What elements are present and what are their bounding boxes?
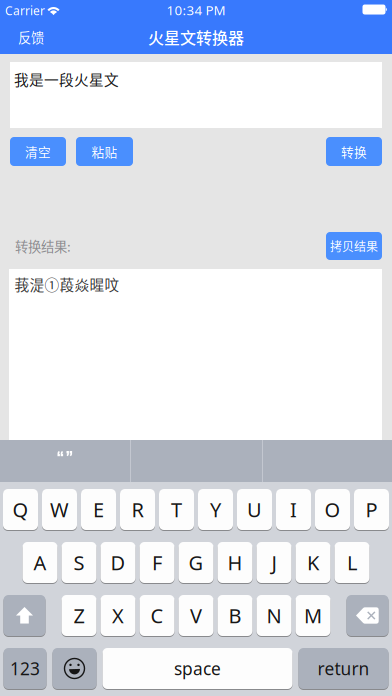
staticText: Z (73, 602, 84, 629)
button[interactable]: 拷贝结果 (326, 232, 382, 260)
staticText: return (317, 657, 369, 680)
staticText: W (50, 496, 69, 523)
staticText: 清空 (25, 142, 51, 161)
staticText: G (188, 549, 203, 576)
staticText: 10:34 PM (166, 1, 225, 19)
button[interactable]: H (217, 542, 252, 583)
button[interactable]: A (22, 542, 57, 583)
staticText: V (190, 602, 202, 629)
button[interactable]: X (100, 595, 135, 636)
staticText: A (33, 549, 46, 576)
staticText: D (110, 549, 125, 576)
button[interactable]: K (295, 542, 330, 583)
staticText: E (93, 496, 104, 523)
button[interactable]: J (256, 542, 291, 583)
staticText: space (174, 657, 221, 680)
button[interactable]: 转换 (326, 137, 382, 166)
button[interactable]: Z (61, 595, 96, 636)
button[interactable] (0, 440, 130, 482)
staticText: Carrier (5, 2, 45, 18)
button[interactable]: T (159, 489, 194, 530)
button[interactable]: L (334, 542, 369, 583)
staticText: 莪湜①葮焱暒呅 (14, 273, 119, 295)
button[interactable]: D (100, 542, 135, 583)
staticText: X (112, 602, 124, 629)
button[interactable]: S (61, 542, 96, 583)
staticText: H (227, 549, 242, 576)
button[interactable]: 清空 (10, 137, 66, 166)
staticText: L (347, 549, 357, 576)
staticText: 123 (10, 657, 40, 680)
staticText: 转换 (341, 142, 367, 161)
staticText: F (152, 549, 162, 576)
button[interactable]: 反馈 (0, 19, 58, 55)
staticText: P (365, 496, 377, 523)
staticText: Y (210, 496, 221, 523)
staticText: 我是一段火星文 (14, 68, 119, 90)
button[interactable]: Y (198, 489, 233, 530)
staticText: B (228, 602, 241, 629)
button[interactable]: P (354, 489, 389, 530)
staticText: 火星文转换器 (148, 25, 244, 49)
staticText: 反馈 (18, 27, 44, 47)
staticText: Q (12, 496, 28, 523)
staticText: N (266, 602, 281, 629)
button[interactable]: 我是一段火星文 (10, 62, 382, 128)
staticText: T (171, 496, 182, 523)
button[interactable]: U (237, 489, 272, 530)
button[interactable]: return (298, 648, 388, 689)
button[interactable]: E (81, 489, 116, 530)
staticText: 转换结果: (15, 236, 71, 256)
staticText: C (150, 602, 163, 629)
button[interactable]: O (315, 489, 350, 530)
button[interactable]: Delete (346, 595, 388, 636)
button[interactable]: 123 (3, 648, 46, 689)
button[interactable]: N (256, 595, 291, 636)
staticText: M (304, 602, 322, 629)
button[interactable]: F (139, 542, 174, 583)
button[interactable]: I (276, 489, 311, 530)
staticText: S (73, 549, 84, 576)
button[interactable]: W (42, 489, 77, 530)
button[interactable]: V (178, 595, 213, 636)
staticText: I (290, 496, 297, 523)
button[interactable]: C (139, 595, 174, 636)
button[interactable]: M (295, 595, 330, 636)
button[interactable]: B (217, 595, 252, 636)
staticText: R (131, 496, 143, 523)
staticText: O (324, 496, 340, 523)
staticText: J (271, 549, 276, 576)
button[interactable]: 粘贴 (76, 137, 133, 166)
button[interactable]: R (120, 489, 155, 530)
staticText: 拷贝结果 (330, 237, 378, 255)
button[interactable]: Emoji (52, 648, 96, 689)
staticText: 粘贴 (91, 142, 117, 161)
staticText: U (247, 496, 262, 523)
button[interactable]: Shift (3, 595, 45, 636)
button[interactable]: G (178, 542, 213, 583)
button[interactable]: space (102, 648, 292, 689)
button[interactable]: 莪湜①葮焱暒呅 (9, 269, 382, 440)
button[interactable]: Q (3, 489, 38, 530)
staticText: K (307, 549, 319, 576)
